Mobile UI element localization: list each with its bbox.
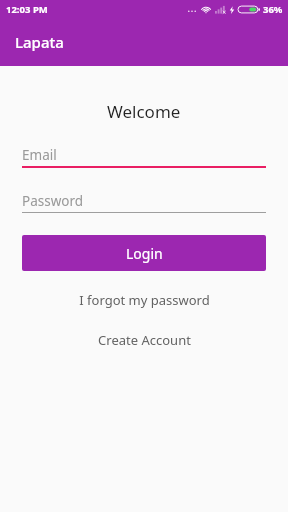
staticText: Login	[126, 244, 163, 263]
staticText: I forgot my password	[79, 291, 210, 309]
staticText: Email	[22, 146, 57, 164]
staticText: Create Account	[98, 331, 191, 349]
button[interactable]: Password	[22, 189, 266, 213]
button[interactable]: Email	[22, 143, 266, 168]
button[interactable]: Create Account	[0, 323, 288, 357]
staticText: 12:03 PM	[6, 3, 48, 16]
staticText: Lapata	[15, 32, 64, 52]
staticText: Password	[22, 192, 84, 210]
staticText: Welcome	[107, 100, 181, 123]
button[interactable]: I forgot my password	[0, 283, 288, 317]
staticText: 36%	[263, 3, 283, 16]
button[interactable]: Login	[22, 235, 266, 271]
